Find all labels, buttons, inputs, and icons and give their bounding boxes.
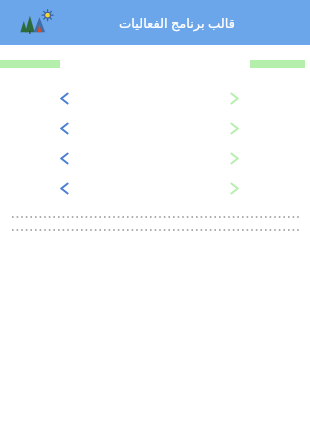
button[interactable]: Previous: [55, 150, 73, 166]
staticText: قالب برنامج الفعاليات: [119, 14, 235, 32]
button[interactable]: Camping event icon: [18, 10, 52, 36]
button[interactable]: Previous: [55, 180, 73, 196]
button[interactable]: Previous: [55, 120, 73, 136]
button[interactable]: Previous: [55, 90, 73, 106]
button[interactable]: Next: [225, 120, 243, 136]
button[interactable]: Next: [225, 150, 243, 166]
button[interactable]: Next: [225, 90, 243, 106]
button[interactable]: Next: [225, 180, 243, 196]
